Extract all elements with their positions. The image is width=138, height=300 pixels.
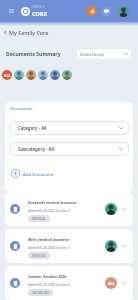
button[interactable]: Category - All: [18, 121, 123, 135]
button[interactable]: Family member: [50, 70, 60, 80]
staticText: CORE: [32, 10, 48, 17]
button[interactable]: Family member: [14, 70, 24, 80]
button[interactable]: Family member: [38, 70, 48, 80]
staticText: Added 09-20-2024 by John S.: [28, 283, 71, 287]
staticText: Smith Family: [80, 52, 105, 57]
button[interactable]: Family member: [2, 70, 12, 80]
staticText: MEDICAL: [32, 217, 46, 221]
staticText: FAMILY: [32, 5, 46, 9]
button[interactable]: Husband's medical insurance: [5, 192, 133, 226]
button[interactable]: More options: [121, 205, 127, 213]
staticText: ALL: [108, 281, 115, 286]
button[interactable]: Profile: [118, 6, 129, 17]
staticText: Wife's medical insurance: [28, 237, 70, 242]
button[interactable]: Subcategory - All: [18, 142, 123, 156]
staticText: My Family Core: [9, 29, 49, 36]
button[interactable]: Family member: [26, 70, 36, 80]
staticText: Category - All: [18, 125, 47, 131]
button[interactable]: Add: [87, 6, 97, 16]
button[interactable]: Family member: [62, 70, 72, 80]
staticText: ALL: [4, 73, 11, 78]
staticText: Added 09-20-2024 by John S.: [28, 246, 71, 250]
staticText: MEDICAL: [32, 254, 46, 258]
staticText: Documents Summary: [6, 51, 61, 58]
staticText: Documents: [10, 106, 33, 112]
button[interactable]: Add Document: [10, 169, 54, 178]
button[interactable]: Smith Family: [80, 48, 128, 60]
button[interactable]: More options: [121, 279, 127, 287]
staticText: Added 09-20-2024 by John S.: [28, 209, 71, 213]
button[interactable]: My Family Core: [3, 27, 138, 37]
button[interactable]: Chat: [102, 7, 111, 16]
staticText: Add Document: [23, 171, 54, 177]
staticText: Summer Vacation 2024: [28, 274, 66, 279]
staticText: VACATIONS: [32, 291, 49, 295]
button[interactable]: Menu: [9, 6, 14, 16]
button[interactable]: Wife's medical insurance: [5, 229, 133, 263]
staticText: Husband's medical insurance: [28, 200, 77, 205]
button[interactable]: Summer Vacation 2024: [5, 266, 133, 300]
button[interactable]: More options: [121, 242, 127, 250]
staticText: Subcategory - All: [18, 146, 54, 152]
